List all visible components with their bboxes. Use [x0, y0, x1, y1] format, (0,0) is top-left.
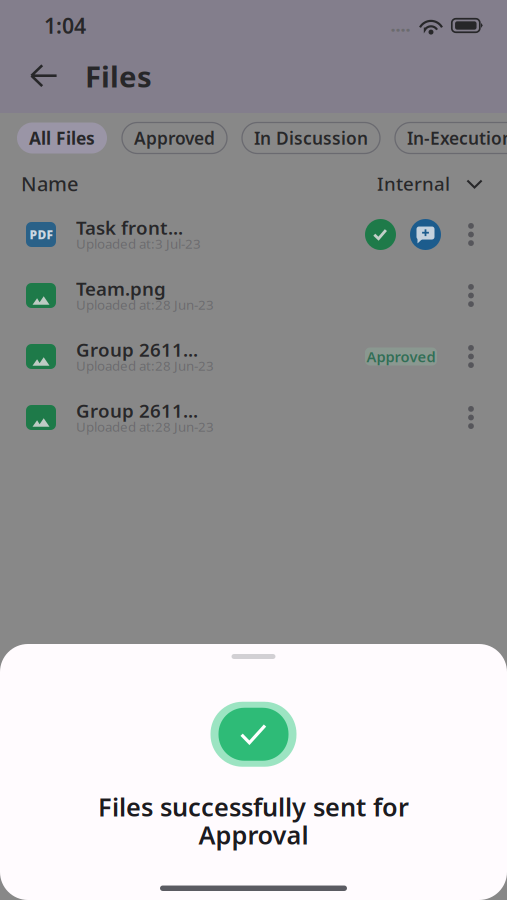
button[interactable]: All Files — [17, 122, 107, 153]
staticText: Uploaded at:28 Jun-23 — [76, 357, 214, 374]
staticText: PDF — [29, 226, 52, 242]
button[interactable]: Group 2611... — [0, 326, 507, 387]
staticText: In-Execution — [407, 126, 507, 149]
staticText: Task front... — [76, 215, 183, 240]
button[interactable]: Team.png — [0, 265, 507, 326]
staticText: Group 2611... — [76, 337, 198, 362]
staticText: 1:04 — [44, 11, 86, 40]
button[interactable]: Back — [24, 55, 64, 97]
staticText: Team.png — [76, 276, 166, 301]
button[interactable]: Approved — [122, 122, 227, 153]
staticText: In Discussion — [254, 126, 368, 149]
staticText: Group 2611... — [76, 398, 198, 423]
button[interactable]: In Discussion — [242, 122, 380, 153]
staticText: Uploaded at:28 Jun-23 — [76, 296, 214, 313]
button[interactable]: PDF — [0, 204, 507, 265]
button[interactable]: In-Execution — [395, 122, 507, 153]
button[interactable]: Group 2611... — [0, 387, 507, 448]
staticText: Name — [21, 170, 78, 197]
button[interactable]: Internal — [377, 171, 483, 196]
staticText: Approved — [134, 126, 215, 149]
staticText: Files successfully sent for — [98, 790, 409, 823]
staticText: Approved — [366, 347, 435, 366]
staticText: Uploaded at:28 Jun-23 — [76, 418, 214, 435]
staticText: Approval — [198, 818, 308, 851]
staticText: Files — [85, 56, 152, 95]
staticText: .... — [391, 15, 411, 36]
staticText: Uploaded at:3 Jul-23 — [76, 235, 201, 252]
staticText: Internal — [377, 171, 450, 196]
staticText: All Files — [29, 126, 95, 149]
